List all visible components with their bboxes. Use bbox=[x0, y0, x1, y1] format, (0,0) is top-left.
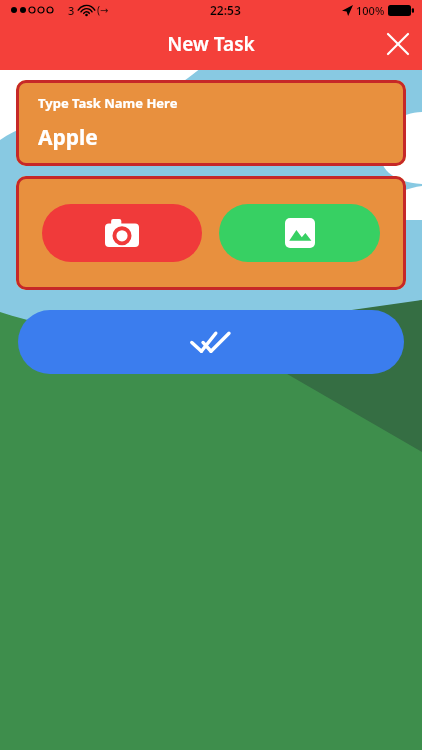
button[interactable]: Take photo bbox=[42, 204, 202, 262]
staticText: 22:53 bbox=[210, 2, 241, 18]
button[interactable]: Close bbox=[374, 20, 422, 68]
button[interactable]: Type Task Name Here bbox=[16, 80, 406, 166]
staticText: New Task bbox=[167, 31, 255, 57]
staticText: Apple bbox=[38, 123, 98, 152]
staticText: 100% bbox=[356, 3, 385, 18]
staticText: (→ bbox=[97, 3, 109, 17]
staticText: Type Task Name Here bbox=[38, 94, 178, 112]
staticText: 3 bbox=[68, 3, 75, 18]
button[interactable]: Save task bbox=[18, 310, 404, 374]
button[interactable]: Choose image bbox=[219, 204, 380, 262]
